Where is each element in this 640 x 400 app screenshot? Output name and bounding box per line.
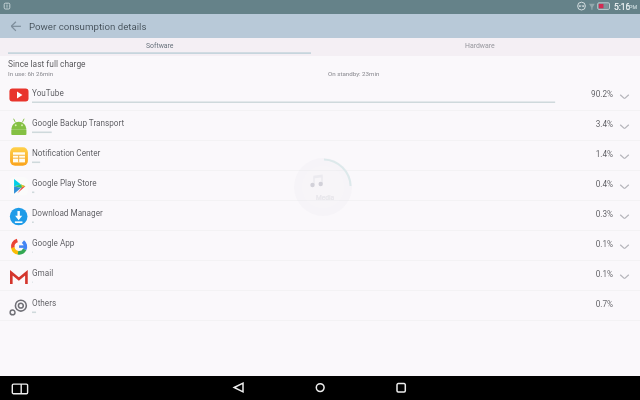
staticText: In use: 6h 26min bbox=[8, 70, 54, 77]
staticText: 3.4% bbox=[563, 119, 613, 129]
button[interactable]: Google App bbox=[0, 231, 640, 261]
button[interactable]: YouTube bbox=[0, 81, 640, 111]
button[interactable]: Back bbox=[5, 15, 27, 37]
button[interactable]: Home bbox=[309, 378, 331, 400]
staticText: Notification Center bbox=[32, 148, 101, 158]
staticText: Software bbox=[146, 42, 174, 50]
staticText: 5:16 bbox=[614, 2, 631, 12]
button[interactable]: Expand bbox=[616, 178, 632, 194]
staticText: Power consumption details bbox=[29, 21, 147, 32]
staticText: Gmail bbox=[32, 268, 54, 278]
button[interactable]: Download Manager bbox=[0, 201, 640, 231]
button[interactable]: Expand bbox=[616, 208, 632, 224]
button[interactable]: Gmail bbox=[0, 261, 640, 291]
staticText: YouTube bbox=[32, 88, 64, 98]
staticText: 90.2% bbox=[563, 89, 613, 99]
staticText: 0.1% bbox=[563, 239, 613, 249]
button[interactable]: Hardware bbox=[320, 38, 640, 56]
staticText: 0.7% bbox=[563, 299, 613, 309]
staticText: On standby: 23min bbox=[328, 70, 380, 77]
staticText: Others bbox=[32, 298, 57, 308]
staticText: Media bbox=[316, 194, 335, 202]
staticText: Download Manager bbox=[32, 208, 103, 218]
button[interactable]: Back bbox=[228, 378, 250, 400]
button[interactable]: Google Backup Transport bbox=[0, 111, 640, 141]
button[interactable]: Google Play Store bbox=[0, 171, 640, 201]
staticText: Google Play Store bbox=[32, 178, 97, 188]
button[interactable]: Expand bbox=[616, 148, 632, 164]
button[interactable]: Expand bbox=[616, 118, 632, 134]
staticText: 0.4% bbox=[563, 179, 613, 189]
button[interactable]: Notification Center bbox=[0, 141, 640, 171]
staticText: PM bbox=[629, 4, 638, 10]
staticText: 0.3% bbox=[563, 209, 613, 219]
staticText: Google App bbox=[32, 238, 75, 248]
button[interactable]: Split screen bbox=[9, 378, 31, 400]
button[interactable]: Expand bbox=[616, 88, 632, 104]
button[interactable]: Recent apps bbox=[390, 378, 412, 400]
staticText: Google Backup Transport bbox=[32, 118, 125, 128]
button[interactable]: Expand bbox=[616, 268, 632, 284]
button[interactable]: Expand bbox=[616, 238, 632, 254]
staticText: Since last full charge bbox=[8, 59, 86, 69]
staticText: Hardware bbox=[465, 42, 495, 50]
staticText: 1.4% bbox=[563, 149, 613, 159]
staticText: 0.1% bbox=[563, 269, 613, 279]
button[interactable]: Others bbox=[0, 291, 640, 321]
button[interactable]: Software bbox=[0, 38, 320, 56]
